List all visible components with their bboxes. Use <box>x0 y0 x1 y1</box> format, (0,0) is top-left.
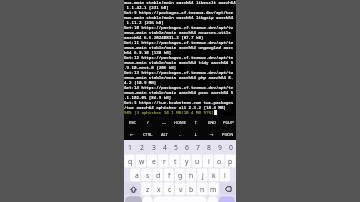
button[interactable]: p <box>225 154 236 168</box>
staticText: j <box>202 171 204 180</box>
staticText: HOME <box>174 120 186 125</box>
button[interactable]: 4 <box>159 140 170 154</box>
staticText: .1.102-05 [84.9 kB] <box>124 95 236 100</box>
staticText: Get:12 https://packages-cf.termux.dev/ap… <box>124 55 236 60</box>
staticText: .9.10-next-0 [206 kB] <box>124 65 236 70</box>
staticText: → <box>210 132 214 137</box>
button[interactable]: CTRL <box>140 128 156 140</box>
staticText: w <box>139 157 145 166</box>
button[interactable]: → <box>204 128 220 140</box>
staticText: 6 <box>185 143 189 152</box>
button[interactable]: 6 <box>181 140 192 154</box>
button[interactable]: 8 <box>203 140 214 154</box>
button[interactable]: Shift <box>124 182 142 196</box>
staticText: l <box>224 171 226 180</box>
button[interactable]: 5 <box>170 140 181 154</box>
button[interactable]: j <box>197 168 208 182</box>
staticText: Get:14 https://packages-cf.termux.dev/ap… <box>124 85 236 90</box>
button[interactable]: 2 <box>136 140 148 154</box>
staticText: 1 <box>128 143 132 152</box>
staticText: 2 <box>140 143 144 152</box>
button[interactable]: . <box>208 196 219 202</box>
staticText: - <box>179 132 181 137</box>
staticText: i <box>208 157 210 166</box>
button[interactable]: f <box>164 168 175 182</box>
button[interactable]: HOME <box>172 116 188 128</box>
button[interactable]: x <box>153 182 164 196</box>
staticText: 1.1.42-1 [231 kB] <box>124 5 236 10</box>
button[interactable]: 7 <box>192 140 203 154</box>
button[interactable]: m <box>208 182 219 196</box>
staticText: rmux-main stable/main aarch64 ungoogled … <box>124 45 236 50</box>
button[interactable]: n <box>197 182 208 196</box>
staticText: 0 <box>229 143 233 152</box>
staticText: ↑ <box>194 120 198 125</box>
button[interactable]: 9 <box>214 140 225 154</box>
button[interactable]: s <box>142 168 153 182</box>
button[interactable]: 1 <box>124 140 136 154</box>
button[interactable]: — <box>156 116 172 128</box>
staticText: t <box>174 157 177 166</box>
button[interactable]: c <box>164 182 175 196</box>
staticText: — <box>162 120 166 125</box>
staticText: Get:13 https://packages-cf.termux.dev/ap… <box>124 70 236 75</box>
staticText: k <box>212 171 216 180</box>
button[interactable]: b <box>186 182 197 196</box>
staticText: /tur aarch64 aphisher all 2.3.2 [18.4 MB… <box>124 105 236 110</box>
button[interactable]: q <box>124 154 136 168</box>
button[interactable]: l <box>219 168 230 182</box>
staticText: 4 <box>163 143 167 152</box>
staticText: PGDN <box>222 132 234 137</box>
button[interactable]: Backspace <box>219 182 236 196</box>
button[interactable]: PGUP <box>220 116 236 128</box>
button[interactable]: e <box>148 154 159 168</box>
button[interactable]: Enter <box>219 196 236 202</box>
button[interactable]: u <box>192 154 203 168</box>
button[interactable]: ← <box>124 128 140 140</box>
button[interactable]: 3 <box>148 140 159 154</box>
button[interactable]: d <box>153 168 164 182</box>
staticText: ← <box>130 132 134 137</box>
staticText: m <box>210 185 217 194</box>
button[interactable]: PGDN <box>220 128 236 140</box>
button[interactable]: , <box>141 196 152 202</box>
staticText: / <box>147 120 149 125</box>
staticText: . <box>213 196 215 202</box>
button[interactable]: ↓ <box>188 128 204 140</box>
button[interactable]: ALT <box>156 128 172 140</box>
button[interactable]: a <box>131 168 142 182</box>
staticText: Get:9 https://packages-cf.termux.dev/apt… <box>124 10 236 15</box>
button[interactable]: y <box>181 154 192 168</box>
staticText: p <box>228 157 233 166</box>
staticText: ↓ <box>194 132 198 137</box>
staticText: r <box>163 157 166 166</box>
staticText: h64 6.9.10 [138 kB] <box>124 50 236 55</box>
button[interactable]: / <box>140 116 156 128</box>
staticText: d <box>156 171 161 180</box>
button[interactable]: k <box>208 168 219 182</box>
button[interactable]: Symbols <box>124 196 141 202</box>
button[interactable]: - <box>172 128 188 140</box>
staticText: aarch64 6.5.20240831-2 [87.7 kB] <box>124 35 236 40</box>
button[interactable]: w <box>136 154 148 168</box>
button[interactable]: r <box>159 154 170 168</box>
staticText: rmux-main stable/main aarch64 tidy aarch… <box>124 60 236 65</box>
button[interactable]: 0 <box>225 140 236 154</box>
button[interactable]: o <box>214 154 225 168</box>
staticText: Get:11 https://packages-cf.termux.dev/ap… <box>124 40 236 45</box>
button[interactable]: t <box>170 154 181 168</box>
staticText: END <box>208 120 217 125</box>
staticText: b <box>189 185 194 194</box>
staticText: u <box>195 157 200 166</box>
button[interactable]: Space <box>152 196 208 202</box>
button[interactable]: v <box>175 182 186 196</box>
button[interactable]: END <box>204 116 220 128</box>
button[interactable]: g <box>175 168 186 182</box>
staticText: mux-main stable/main aarch64 libexslt aa… <box>124 0 236 5</box>
button[interactable]: i <box>203 154 214 168</box>
button[interactable]: h <box>186 168 197 182</box>
button[interactable]: z <box>142 182 153 196</box>
staticText: 1.11.2 [236 kB] <box>124 20 236 25</box>
button[interactable]: ESC <box>124 116 140 128</box>
button[interactable]: ↑ <box>188 116 204 128</box>
